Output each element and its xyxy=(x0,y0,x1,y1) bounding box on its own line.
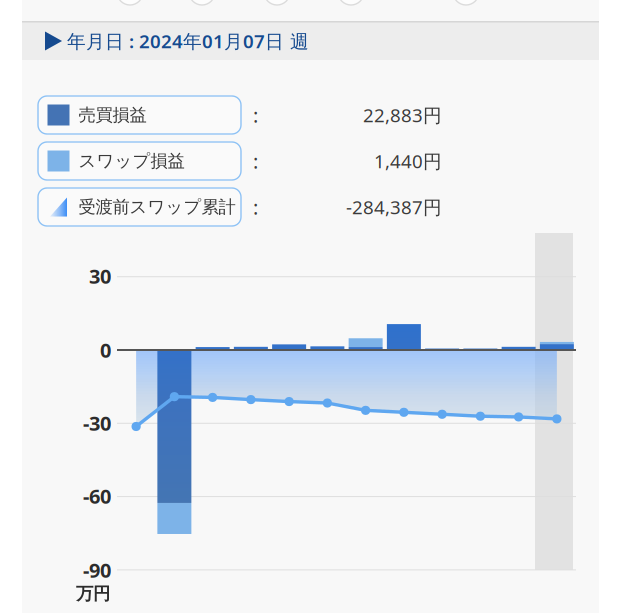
button[interactable]: 受渡前スワップ累計 xyxy=(38,188,241,226)
button[interactable]: Option 1 xyxy=(117,0,143,5)
staticText: 売買損益 xyxy=(78,104,146,126)
staticText: 年月日 : 2024年01月07日 週 xyxy=(67,29,309,53)
staticText: スワップ損益 xyxy=(78,150,184,172)
button[interactable]: スワップ損益 xyxy=(38,142,241,180)
staticText: 万円 xyxy=(76,583,110,604)
staticText: 30 xyxy=(89,263,111,289)
staticText: : xyxy=(253,102,258,128)
staticText: -30 xyxy=(83,410,111,436)
staticText: -284,387円 xyxy=(346,195,442,219)
staticText: -60 xyxy=(83,483,111,509)
button[interactable]: 売買損益 xyxy=(38,96,241,134)
staticText: : xyxy=(253,194,258,220)
staticText: 22,883円 xyxy=(363,103,442,127)
button[interactable]: Option 5 xyxy=(453,0,479,5)
button[interactable]: Option 4 xyxy=(338,0,364,5)
button[interactable]: Option 2 xyxy=(189,0,215,5)
staticText: 1,440円 xyxy=(374,149,442,173)
staticText: 0 xyxy=(100,337,111,363)
button[interactable]: 年月日 : 2024年01月07日 週 xyxy=(22,22,599,60)
button[interactable]: Option 3 xyxy=(264,0,290,5)
staticText: : xyxy=(253,148,258,174)
staticText: 受渡前スワップ累計 xyxy=(78,196,235,218)
staticText: -90 xyxy=(83,557,111,583)
